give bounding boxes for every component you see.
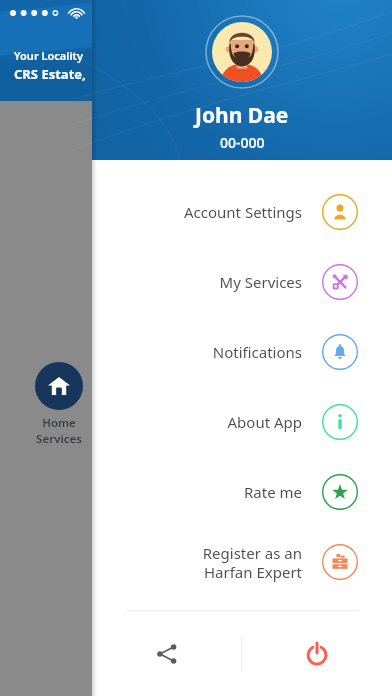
staticText: 00-000 — [220, 133, 265, 152]
staticText: Notifications — [212, 342, 302, 362]
button[interactable]: About App — [92, 387, 392, 457]
staticText: Rate me — [243, 482, 302, 502]
button[interactable]: Log out — [242, 611, 392, 696]
staticText: Register as an Harfan Expert — [202, 543, 302, 582]
staticText: Services — [36, 431, 82, 447]
staticText: Your Locality — [14, 48, 83, 63]
button[interactable]: Notifications — [92, 317, 392, 387]
button[interactable]: Share — [92, 611, 241, 696]
staticText: Home — [42, 415, 76, 431]
staticText: About App — [227, 412, 302, 432]
button[interactable]: My Services — [92, 247, 392, 317]
staticText: John Dae — [195, 101, 289, 130]
button[interactable]: Home — [31, 362, 87, 447]
staticText: CRS Estate, — [14, 65, 86, 83]
button[interactable]: Rate me — [92, 457, 392, 527]
staticText: Account Settings — [184, 202, 302, 222]
staticText: My Services — [219, 272, 302, 292]
button[interactable]: Account Settings — [92, 177, 392, 247]
button[interactable]: Register as an Harfan Expert — [92, 527, 392, 597]
